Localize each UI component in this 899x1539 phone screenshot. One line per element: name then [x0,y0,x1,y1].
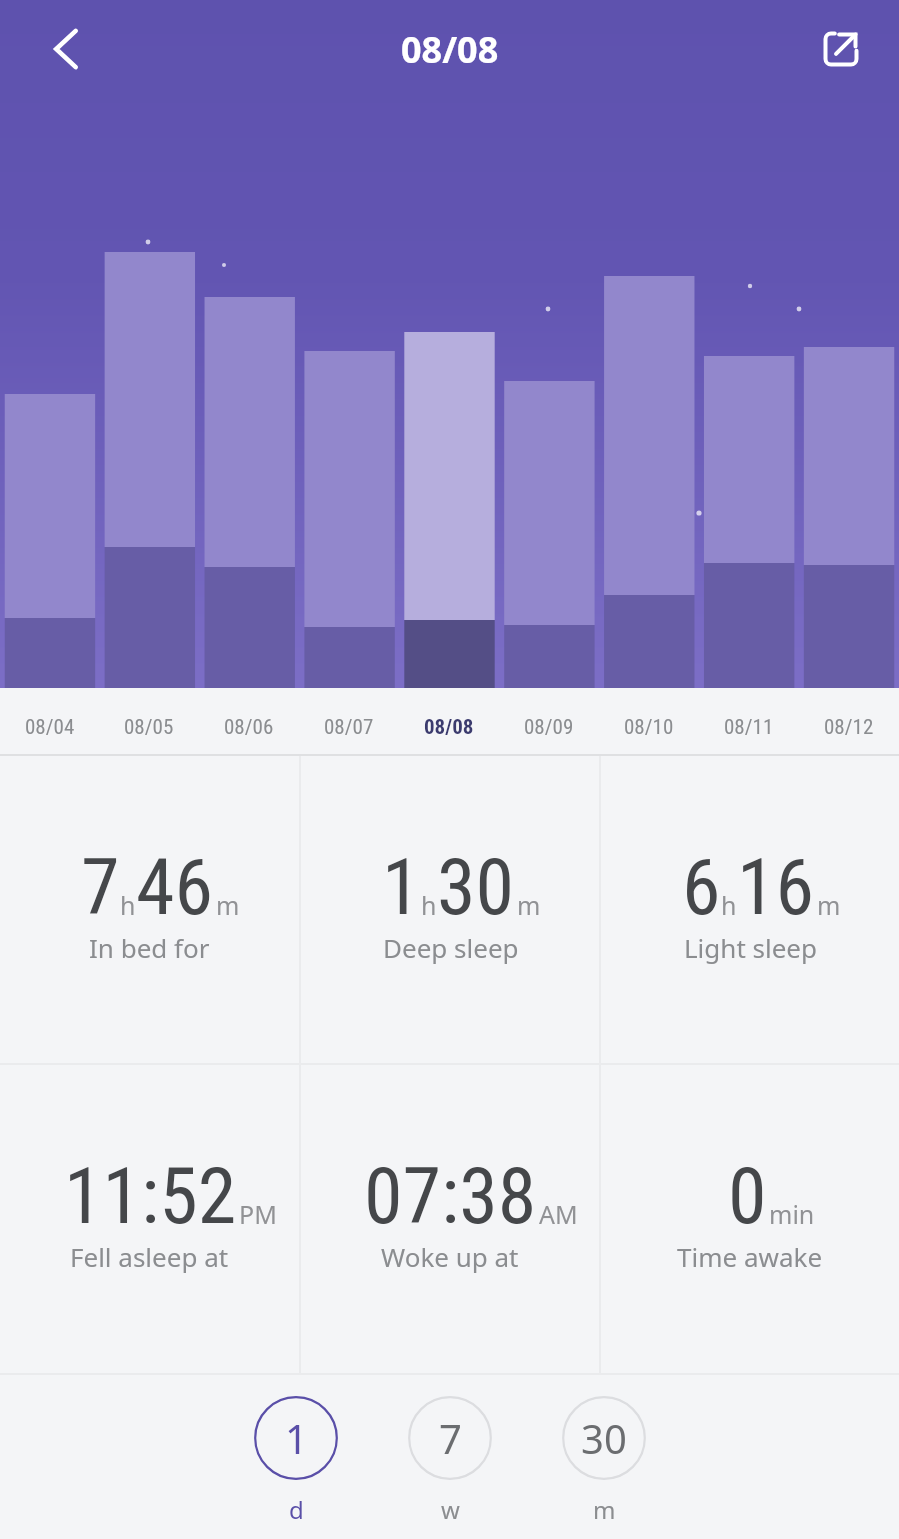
staticText: m [216,888,240,922]
staticText: 1 [382,842,421,933]
staticText: 30 [437,842,515,933]
staticText: 08/06 [224,715,274,740]
button[interactable]: 07:38 [301,1065,599,1373]
staticText: 11:52 [64,1151,237,1242]
staticText: 6 [682,842,721,933]
button[interactable]: 30 [562,1396,646,1526]
staticText: m [817,888,841,922]
staticText: PM [239,1197,277,1231]
staticText: m [517,888,541,922]
staticText: In bed for [89,930,210,965]
staticText: Woke up at [381,1239,519,1274]
button[interactable]: 6 [601,756,899,1063]
button[interactable]: 11:52 [0,1065,299,1373]
button[interactable]: 08/10 [599,688,699,754]
button[interactable]: 0 [601,1065,899,1373]
staticText: 08/07 [324,715,374,740]
staticText: 30 [581,1411,627,1465]
button[interactable]: 7 [408,1396,492,1526]
staticText: 7 [81,842,120,933]
staticText: m [593,1493,616,1526]
staticText: 07:38 [364,1151,537,1242]
staticText: 08/08 [401,25,499,74]
staticText: Fell asleep at [70,1239,229,1274]
staticText: Light sleep [684,930,818,965]
button[interactable]: 08/08 [399,688,499,754]
staticText: 08/05 [124,715,174,740]
staticText: 08/04 [25,715,75,740]
staticText: 08/08 [424,715,474,740]
button[interactable]: 1 [301,756,599,1063]
staticText: 7 [439,1411,462,1465]
button[interactable]: 08/09 [499,688,599,754]
staticText: 08/09 [524,715,574,740]
button[interactable]: 08/06 [199,688,299,754]
staticText: d [289,1493,304,1526]
button[interactable]: 08/05 [99,688,199,754]
staticText: Time awake [677,1239,823,1274]
staticText: 16 [737,842,815,933]
staticText: h [120,888,136,922]
button[interactable]: 08/11 [699,688,799,754]
staticText: AM [539,1197,578,1231]
staticText: 08/10 [624,715,674,740]
button[interactable]: 1 [254,1396,338,1526]
staticText: 1 [285,1411,308,1465]
staticText: Deep sleep [383,930,519,965]
staticText: 0 [728,1151,767,1242]
staticText: min [769,1197,815,1231]
staticText: w [441,1493,460,1526]
button[interactable]: 08/07 [299,688,399,754]
staticText: 08/11 [724,715,774,740]
staticText: 08/12 [824,715,874,740]
button[interactable]: Share [810,18,872,80]
staticText: h [421,888,437,922]
button[interactable]: Back [35,18,97,80]
staticText: h [721,888,737,922]
button[interactable]: 08/12 [799,688,899,754]
button[interactable]: 08/04 [0,688,99,754]
button[interactable]: 7 [0,756,299,1063]
staticText: 46 [136,842,214,933]
